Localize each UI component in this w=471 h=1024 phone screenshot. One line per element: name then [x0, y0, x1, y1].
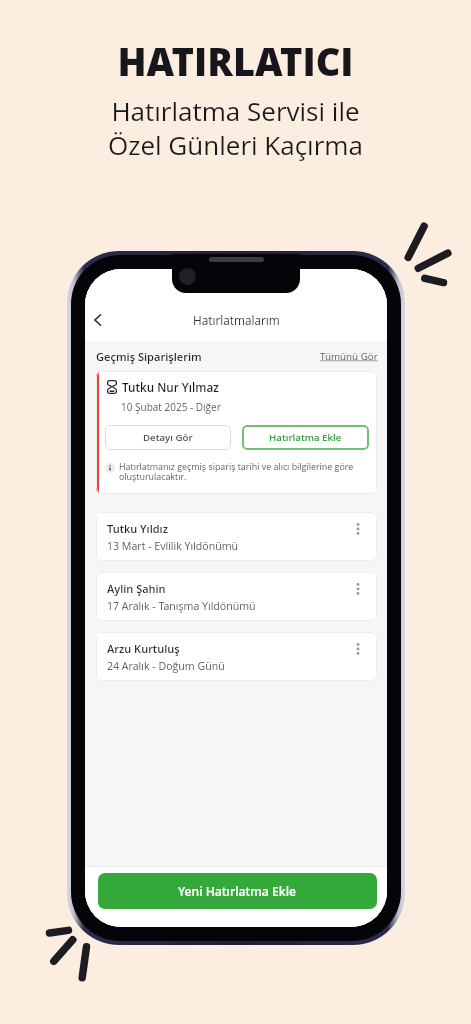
staticText: Hatırlatma Servisi ile Özel Günleri Kaçı…: [108, 93, 363, 162]
button[interactable]: Tümünü Gör: [320, 350, 378, 363]
staticText: Hatırlatmanız geçmiş sipariş tarihi ve a…: [119, 460, 369, 483]
staticText: Aylin Şahin: [107, 581, 166, 596]
staticText: 13 Mart - Evlilik Yıldönümü: [107, 539, 239, 553]
staticText: Detayı Gör: [143, 431, 193, 444]
button[interactable]: Detayı Gör: [105, 425, 231, 450]
staticText: Tutku Yıldız: [107, 521, 168, 536]
staticText: Hatırlatmalarım: [193, 312, 280, 328]
button[interactable]: Yeni Hatırlatma Ekle: [98, 873, 377, 909]
button[interactable]: Aylin Şahin: [96, 572, 377, 621]
staticText: Geçmiş Siparişlerim: [96, 349, 202, 364]
button[interactable]: More options: [347, 632, 369, 681]
staticText: Arzu Kurtuluş: [107, 641, 180, 656]
staticText: Yeni Hatırlatma Ekle: [178, 883, 297, 899]
button[interactable]: More options: [347, 572, 369, 621]
staticText: Tümünü Gör: [320, 350, 378, 363]
staticText: Hatırlatma Ekle: [269, 431, 342, 444]
button[interactable]: Tutku Yıldız: [96, 512, 377, 561]
button[interactable]: Back: [86, 308, 110, 332]
button[interactable]: Arzu Kurtuluş: [96, 632, 377, 681]
staticText: 17 Aralık - Tanışma Yıldönümü: [107, 599, 256, 613]
staticText: HATIRLATICI: [117, 35, 354, 87]
staticText: Tutku Nur Yılmaz: [122, 379, 219, 395]
staticText: 10 Şubat 2025 - Diğer: [121, 400, 221, 414]
button[interactable]: More options: [347, 512, 369, 561]
button[interactable]: Hatırlatma Ekle: [242, 425, 369, 450]
staticText: 24 Aralık - Doğum Günü: [107, 659, 225, 673]
